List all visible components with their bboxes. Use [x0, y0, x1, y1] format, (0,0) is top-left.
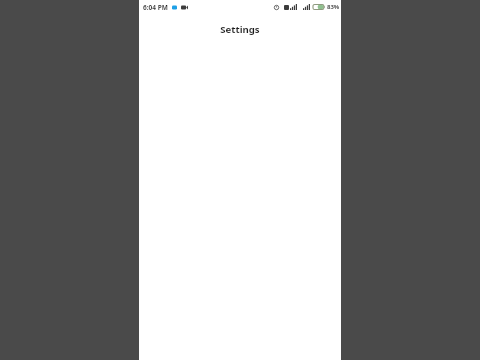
staticText: 83%	[327, 3, 340, 11]
button[interactable]: Settings	[139, 14, 341, 46]
button[interactable]: Alarm set	[274, 5, 279, 10]
staticText: Settings	[220, 23, 260, 36]
button[interactable]: Screen recording active	[172, 5, 177, 10]
staticText: 6:04 PM	[143, 3, 168, 12]
button[interactable]: Video recording	[181, 5, 188, 10]
